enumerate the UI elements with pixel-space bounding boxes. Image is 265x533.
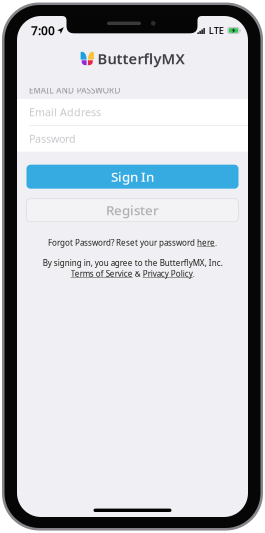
staticText: Forgot Password? Reset your password her… [48, 237, 217, 248]
staticText: Register [106, 201, 159, 219]
button[interactable]: Forgot Password? Reset your password her… [48, 238, 217, 248]
staticText: ButterflyMX [97, 49, 184, 68]
staticText: LTE [209, 24, 224, 37]
staticText: Sign In [111, 168, 154, 185]
staticText: Password [29, 132, 76, 146]
button[interactable]: By signing in, you agree to the Butterfl… [31, 258, 234, 279]
staticText: By signing in, you agree to the Butterfl… [42, 258, 222, 279]
staticText: Email Address [29, 105, 101, 119]
staticText: EMAIL AND PASSWORD [29, 85, 120, 96]
staticText: 7:00 [31, 22, 55, 38]
button[interactable]: Register [26, 199, 238, 222]
button[interactable]: Sign In [26, 165, 238, 189]
button[interactable]: Email Address [17, 99, 248, 125]
button[interactable]: Password [17, 126, 248, 152]
